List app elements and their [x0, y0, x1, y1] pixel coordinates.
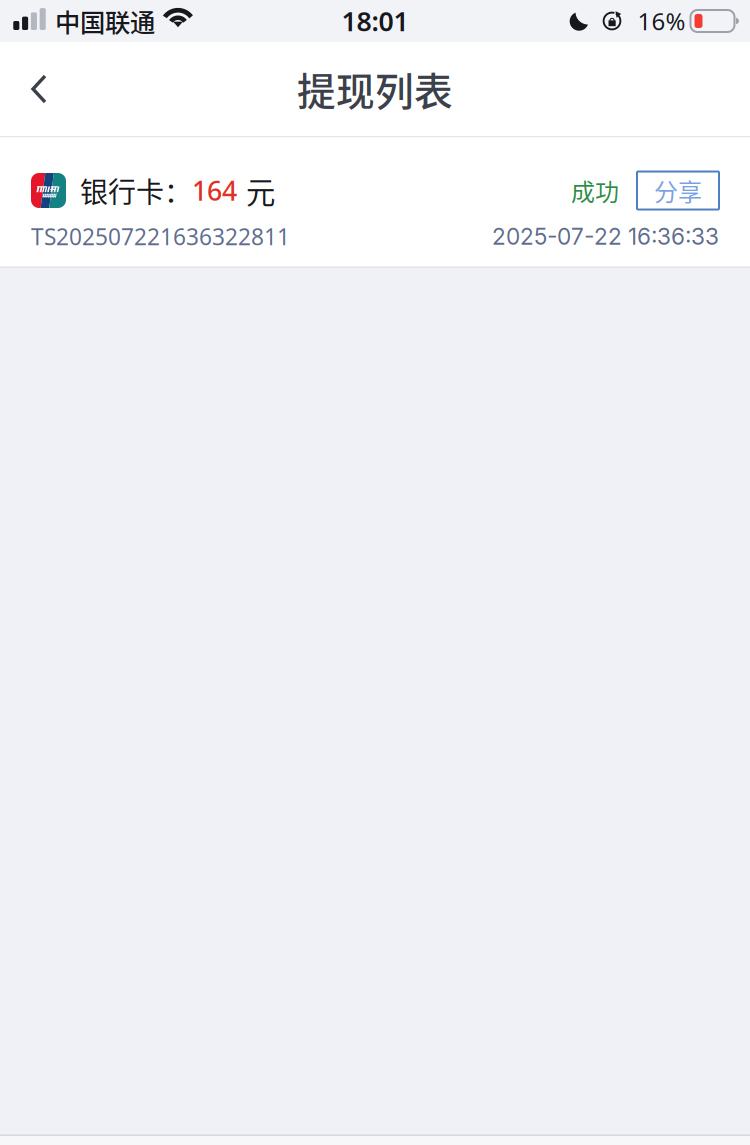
staticText: 银行卡： [80, 170, 192, 211]
staticText: 成功 [571, 173, 619, 208]
staticText: 分享 [654, 173, 702, 208]
staticText: 提现列表 [297, 61, 453, 117]
staticText: TS202507221636322811 [31, 221, 290, 251]
staticText: 中国联通 [55, 3, 155, 39]
staticText: 164 [192, 173, 237, 208]
staticText: 16% [637, 5, 685, 37]
staticText: 18:01 [341, 3, 408, 39]
staticText: 元 [246, 169, 275, 212]
staticText: 2025-07-22 16:36:33 [492, 223, 719, 250]
button[interactable]: Back [0, 42, 78, 136]
button[interactable]: 分享 [637, 171, 719, 209]
